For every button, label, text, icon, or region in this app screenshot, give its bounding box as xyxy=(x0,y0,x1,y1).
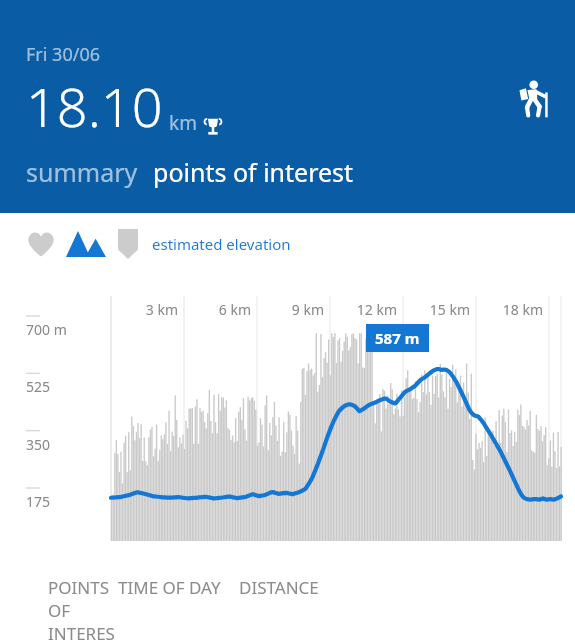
staticText: 587 m xyxy=(375,328,420,348)
staticText: 350 xyxy=(26,435,51,454)
button[interactable]: Speed xyxy=(110,226,146,262)
staticText: 700 m xyxy=(26,320,67,339)
button[interactable]: DISTANCE xyxy=(239,565,575,644)
button[interactable]: Heart rate xyxy=(22,225,60,263)
button[interactable]: TIME OF DAY xyxy=(118,565,239,644)
other: Hiking activity xyxy=(513,80,551,118)
staticText: 175 xyxy=(26,492,51,511)
staticText: 3 km xyxy=(128,300,178,319)
staticText: 15 km xyxy=(420,300,470,319)
staticText: Fri 30/06 xyxy=(26,42,100,67)
staticText: summary xyxy=(26,155,138,189)
staticText: POINTS OF INTEREST xyxy=(48,576,118,644)
button[interactable]: summary xyxy=(26,155,138,189)
button[interactable]: POINTS OF INTEREST xyxy=(0,565,118,644)
staticText: DISTANCE xyxy=(239,576,319,599)
button[interactable]: Elevation xyxy=(64,222,108,266)
staticText: 12 km xyxy=(347,300,397,319)
staticText: 525 xyxy=(26,377,51,396)
staticText: 18.10 xyxy=(26,69,163,143)
staticText: 6 km xyxy=(201,300,251,319)
button[interactable]: 587 m xyxy=(366,324,429,352)
staticText: 18 km xyxy=(493,300,543,319)
staticText: points of interest xyxy=(153,155,354,189)
button[interactable]: points of interest xyxy=(153,155,354,189)
staticText: km xyxy=(169,110,197,136)
staticText: 9 km xyxy=(274,300,324,319)
staticText: estimated elevation xyxy=(152,234,291,254)
staticText: TIME OF DAY xyxy=(118,576,221,599)
